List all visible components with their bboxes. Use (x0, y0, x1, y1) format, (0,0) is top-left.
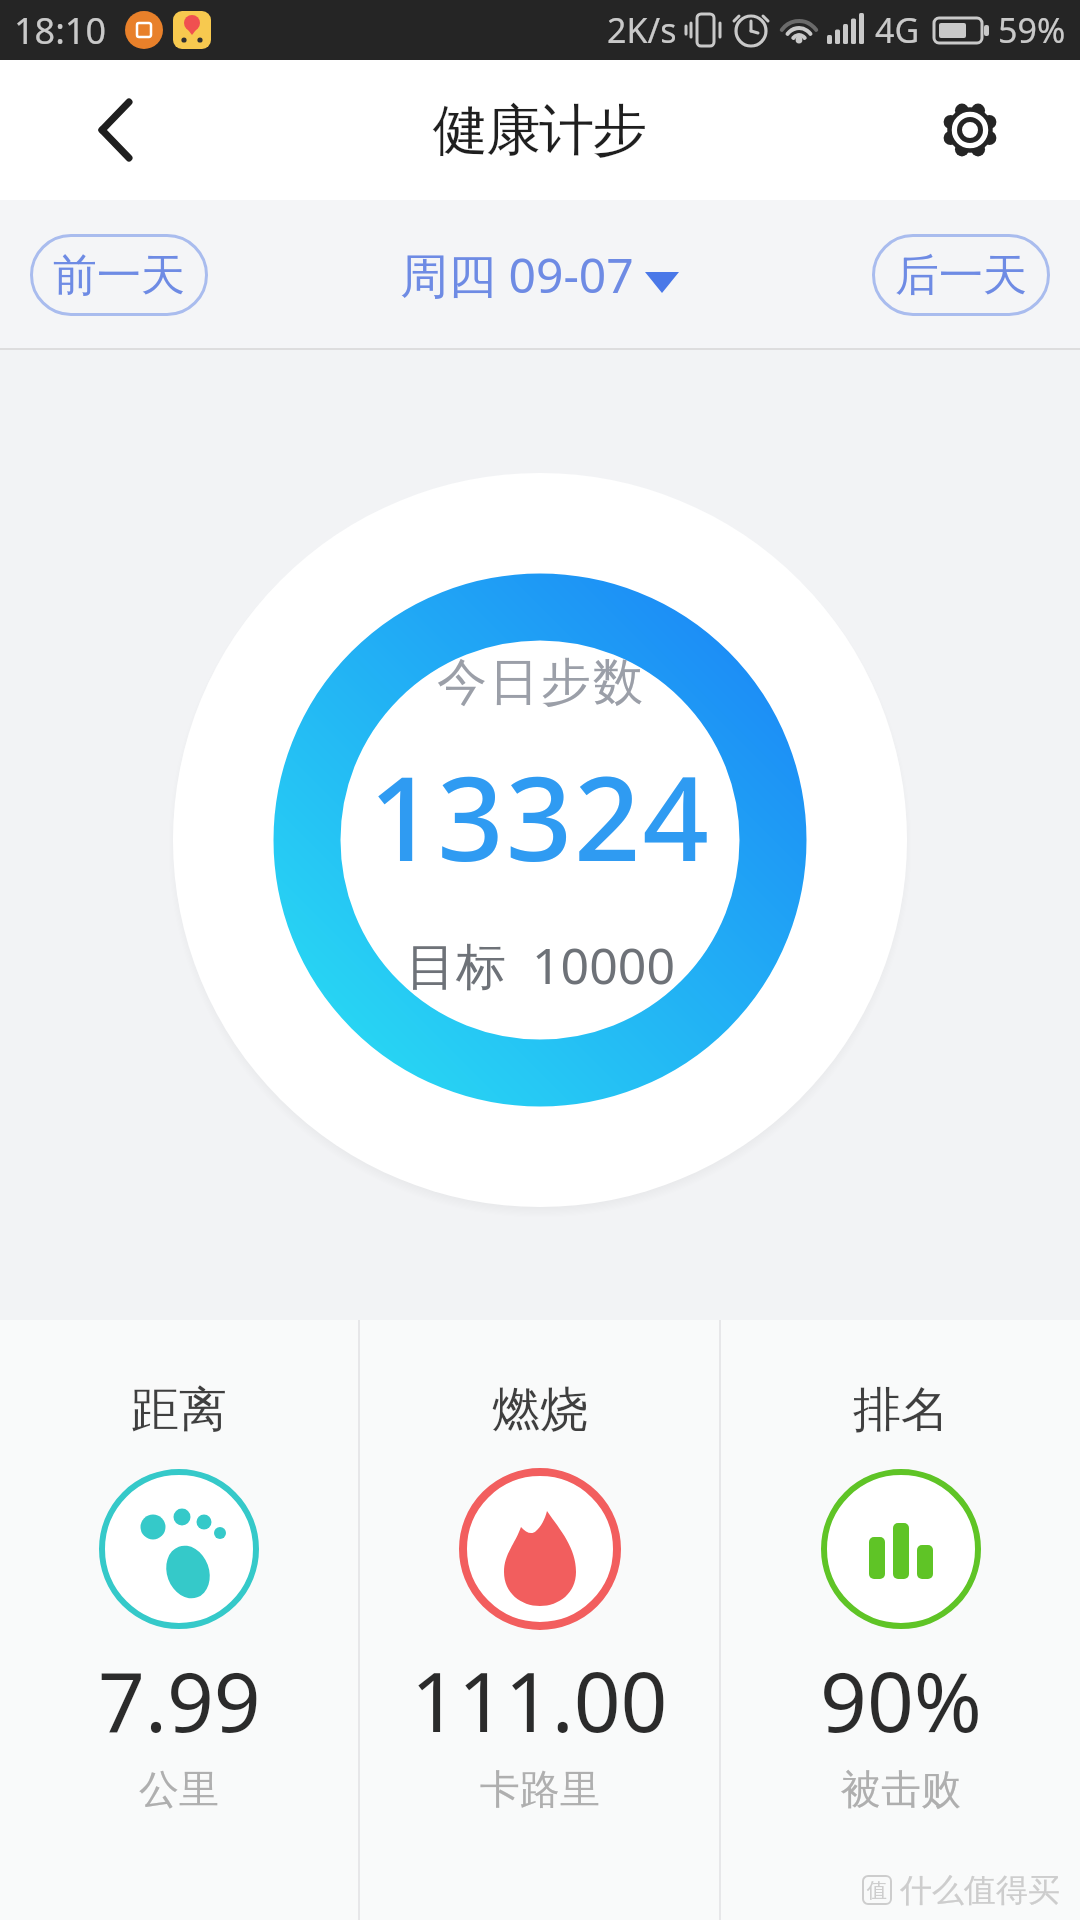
staticText: 2K/s (607, 7, 677, 53)
staticText: 卡路里 (480, 1764, 600, 1814)
button[interactable] (70, 84, 162, 176)
button[interactable]: 距离 (0, 1320, 358, 1920)
staticText: 排名 (853, 1380, 949, 1440)
staticText: 什么值得买 (900, 1870, 1060, 1910)
staticText: 距离 (131, 1380, 227, 1440)
staticText: 59% (998, 7, 1066, 53)
staticText: 燃烧 (492, 1380, 588, 1440)
staticText: 90% (820, 1644, 982, 1756)
button[interactable]: 后一天 (872, 234, 1050, 316)
staticText: 4G (875, 7, 920, 53)
staticText: 被击败 (841, 1764, 961, 1814)
staticText: 18:10 (14, 6, 107, 55)
staticText: 7.99 (98, 1644, 261, 1756)
button[interactable]: 排名 (721, 1320, 1080, 1920)
button[interactable] (932, 92, 1008, 168)
staticText: 前一天 (53, 248, 185, 303)
staticText: 周四 09-07 (400, 242, 634, 308)
staticText: 今日步数 (436, 651, 644, 714)
staticText: 111.00 (411, 1644, 668, 1756)
staticText: 后一天 (895, 248, 1027, 303)
staticText: 13324 (369, 737, 711, 895)
staticText: 目标 10000 (406, 931, 675, 999)
button[interactable]: 周四 09-07 (400, 242, 680, 308)
staticText: 健康计步 (434, 96, 646, 165)
staticText: 公里 (139, 1764, 219, 1814)
button[interactable]: 燃烧 (360, 1320, 719, 1920)
staticText: 值 (867, 1878, 887, 1903)
button[interactable]: 前一天 (30, 234, 208, 316)
